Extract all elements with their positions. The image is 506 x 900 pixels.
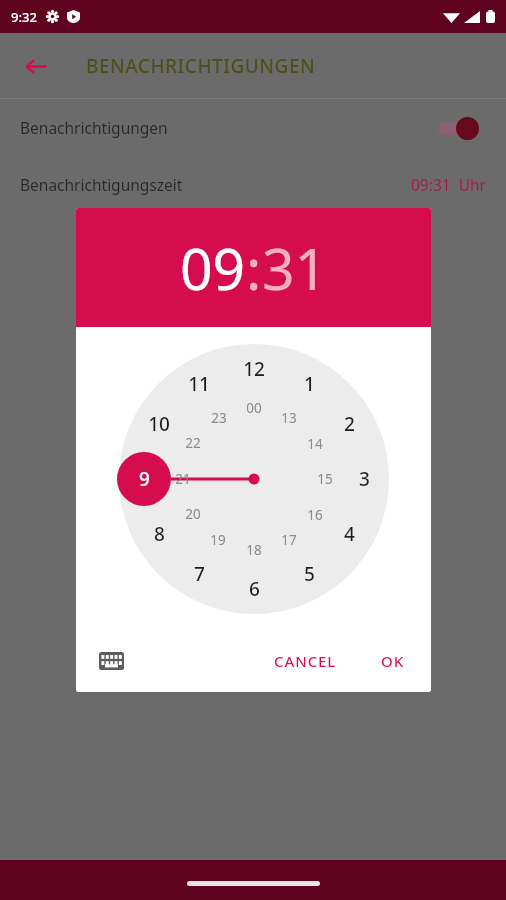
- button[interactable]: 3: [347, 462, 381, 496]
- staticText: 19: [210, 531, 226, 549]
- button[interactable]: Switch to text input mode: [92, 642, 130, 680]
- button[interactable]: 16: [301, 501, 329, 529]
- button[interactable]: CANCEL: [266, 643, 345, 679]
- staticText: 31: [262, 229, 328, 307]
- button[interactable]: OK: [373, 643, 413, 679]
- staticText: 5: [304, 561, 315, 587]
- button[interactable]: 17: [275, 526, 303, 554]
- button[interactable]: 19: [204, 526, 232, 554]
- staticText: 4: [344, 521, 355, 547]
- staticText: 23: [211, 409, 227, 427]
- button[interactable]: 4: [332, 517, 366, 551]
- staticText: 10: [148, 411, 170, 437]
- staticText: BENACHRICHTIGUNGEN: [86, 53, 316, 79]
- button[interactable]: 00: [240, 394, 268, 422]
- button[interactable]: Back: [12, 42, 60, 90]
- button[interactable]: Benachrichtigungen: [0, 99, 506, 156]
- button[interactable]: 21: [169, 465, 197, 493]
- staticText: 9:32: [11, 8, 37, 26]
- button[interactable]: 15: [311, 465, 339, 493]
- staticText: 16: [307, 506, 323, 524]
- staticText: :: [246, 229, 262, 307]
- button[interactable]: 31: [262, 229, 328, 307]
- button[interactable]: 11: [182, 367, 216, 401]
- staticText: CANCEL: [274, 651, 337, 671]
- button[interactable]: 2: [332, 407, 366, 441]
- staticText: 21: [175, 470, 191, 488]
- staticText: 6: [249, 576, 260, 602]
- button[interactable]: 20: [179, 500, 207, 528]
- button[interactable]: 1: [292, 367, 326, 401]
- staticText: 09: [180, 229, 246, 307]
- staticText: 20: [185, 505, 201, 523]
- staticText: Benachrichtigungen: [20, 117, 168, 138]
- staticText: 09:31 Uhr: [411, 174, 486, 195]
- button[interactable]: Benachrichtigungszeit: [0, 156, 506, 213]
- button[interactable]: 22: [179, 429, 207, 457]
- staticText: 17: [281, 531, 297, 549]
- staticText: 7: [194, 561, 205, 587]
- staticText: 18: [246, 541, 262, 559]
- button[interactable]: 18: [240, 536, 268, 564]
- button[interactable]: 9: [127, 462, 161, 496]
- button[interactable]: 6: [237, 572, 271, 606]
- button[interactable]: 10: [142, 407, 176, 441]
- button[interactable]: 09: [180, 229, 246, 307]
- button[interactable]: 5: [292, 557, 326, 591]
- staticText: 22: [185, 434, 201, 452]
- staticText: 11: [188, 371, 210, 397]
- staticText: 00: [246, 399, 262, 417]
- staticText: 8: [154, 521, 165, 547]
- staticText: 9: [139, 466, 150, 492]
- button[interactable]: 14: [301, 430, 329, 458]
- button[interactable]: 7: [182, 557, 216, 591]
- staticText: Benachrichtigungszeit: [20, 174, 183, 195]
- staticText: 3: [359, 466, 370, 492]
- staticText: 1: [304, 371, 315, 397]
- staticText: 12: [243, 356, 265, 382]
- staticText: OK: [381, 651, 405, 671]
- button[interactable]: 23: [205, 404, 233, 432]
- button[interactable]: 13: [275, 404, 303, 432]
- button[interactable]: 8: [142, 517, 176, 551]
- button[interactable]: 12: [237, 352, 271, 386]
- staticText: 13: [281, 409, 297, 427]
- staticText: 2: [344, 411, 355, 437]
- staticText: 15: [317, 470, 333, 488]
- staticText: 14: [307, 435, 323, 453]
